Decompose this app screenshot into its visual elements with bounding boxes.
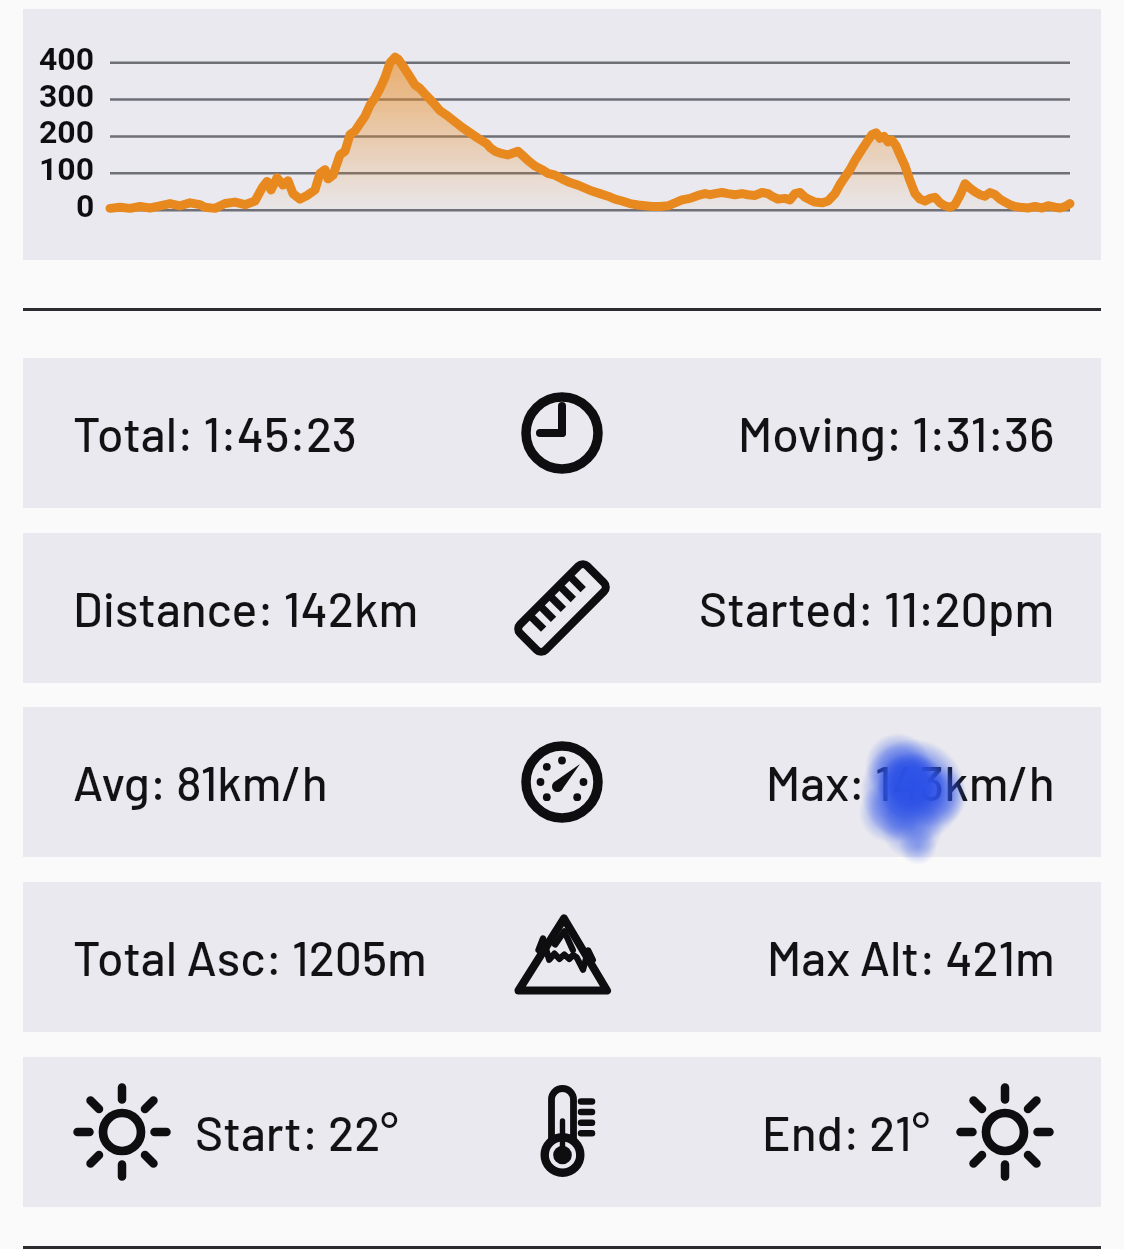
staticText: Distance: 142km — [73, 579, 419, 637]
staticText: 0 — [76, 187, 95, 225]
button[interactable] — [23, 882, 1101, 1032]
staticText: End: 21° — [762, 1103, 930, 1161]
button[interactable] — [23, 358, 1101, 508]
staticText: Max: 143km/h — [766, 753, 1055, 811]
staticText: Total: 1:45:23 — [73, 404, 357, 462]
staticText: 400 — [39, 40, 95, 78]
staticText: Started: 11:20pm — [699, 579, 1055, 637]
staticText: 100 — [39, 150, 95, 188]
button[interactable] — [23, 533, 1101, 683]
staticText: 300 — [39, 77, 95, 115]
staticText: 200 — [39, 113, 95, 151]
staticText: Max Alt: 421m — [767, 928, 1055, 986]
staticText: Start: 22° — [195, 1103, 399, 1161]
staticText: Avg: 81km/h — [73, 753, 328, 811]
staticText: Total Asc: 1205m — [73, 928, 427, 986]
button[interactable] — [23, 707, 1101, 857]
button[interactable] — [23, 1057, 1101, 1207]
staticText: Moving: 1:31:36 — [738, 404, 1055, 462]
